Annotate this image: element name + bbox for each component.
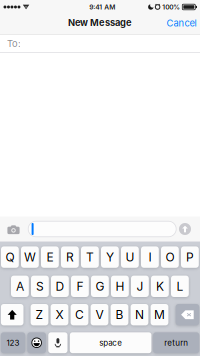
button[interactable]: C: [71, 304, 88, 325]
button[interactable]: X: [51, 304, 68, 325]
button[interactable]: V: [91, 304, 108, 325]
button[interactable]: Take photo: [3, 217, 24, 241]
staticText: Q: [5, 250, 14, 264]
button[interactable]: To:: [0, 34, 200, 52]
button[interactable]: Y: [101, 246, 119, 268]
staticText: J: [136, 279, 143, 293]
button[interactable]: 123: [1, 332, 25, 353]
staticText: L: [176, 279, 183, 293]
button[interactable]: Cancel: [158, 14, 200, 33]
button[interactable]: P: [181, 246, 199, 268]
staticText: C: [75, 308, 84, 322]
button[interactable]: O: [161, 246, 179, 268]
button[interactable]: J: [131, 276, 149, 297]
button[interactable]: R: [61, 246, 79, 268]
staticText: Cancel: [166, 17, 196, 28]
button[interactable]: L: [171, 276, 189, 297]
staticText: E: [46, 250, 53, 264]
staticText: U: [125, 250, 134, 264]
button[interactable]: N: [131, 304, 148, 325]
button[interactable]: G: [91, 276, 109, 297]
button[interactable]: Q: [1, 246, 19, 268]
staticText: S: [36, 279, 44, 293]
staticText: F: [76, 279, 83, 293]
staticText: Z: [35, 308, 43, 322]
staticText: return: [164, 338, 188, 347]
staticText: X: [55, 308, 63, 322]
button[interactable]: Dictation: [48, 332, 67, 353]
button[interactable]: F: [71, 276, 89, 297]
staticText: space: [99, 338, 122, 347]
button[interactable]: A: [11, 276, 29, 297]
button[interactable]: W: [21, 246, 39, 268]
button[interactable]: M: [151, 304, 168, 325]
staticText: O: [165, 250, 174, 264]
button[interactable]: [28, 221, 176, 237]
staticText: Y: [106, 250, 114, 264]
staticText: T: [86, 250, 94, 264]
staticText: To:: [7, 38, 21, 49]
staticText: G: [95, 279, 104, 293]
button[interactable]: H: [111, 276, 129, 297]
button[interactable]: E: [41, 246, 59, 268]
button[interactable]: space: [70, 332, 151, 353]
button[interactable]: I: [141, 246, 159, 268]
staticText: 123: [6, 338, 19, 347]
staticText: K: [156, 279, 164, 293]
button[interactable]: K: [151, 276, 169, 297]
staticText: I: [148, 250, 151, 264]
button[interactable]: T: [81, 246, 99, 268]
staticText: W: [24, 250, 36, 264]
button[interactable]: B: [111, 304, 128, 325]
button[interactable]: return: [153, 332, 199, 353]
button[interactable]: Z: [31, 304, 48, 325]
staticText: R: [66, 250, 74, 264]
button[interactable]: D: [51, 276, 69, 297]
button[interactable]: S: [31, 276, 49, 297]
staticText: 9:41 AM: [89, 3, 115, 11]
button[interactable]: U: [121, 246, 139, 268]
staticText: A: [16, 279, 24, 293]
staticText: B: [115, 308, 123, 322]
staticText: H: [115, 279, 124, 293]
button[interactable]: Send: [179, 223, 191, 235]
button[interactable]: Emoji: [27, 332, 46, 353]
staticText: New Message: [68, 17, 132, 28]
button[interactable]: Delete: [176, 304, 199, 325]
button[interactable]: Shift: [1, 304, 23, 325]
staticText: M: [154, 308, 165, 322]
staticText: D: [55, 279, 64, 293]
staticText: V: [95, 308, 103, 322]
staticText: 100%: [162, 3, 180, 11]
staticText: N: [135, 308, 144, 322]
staticText: P: [186, 250, 194, 264]
